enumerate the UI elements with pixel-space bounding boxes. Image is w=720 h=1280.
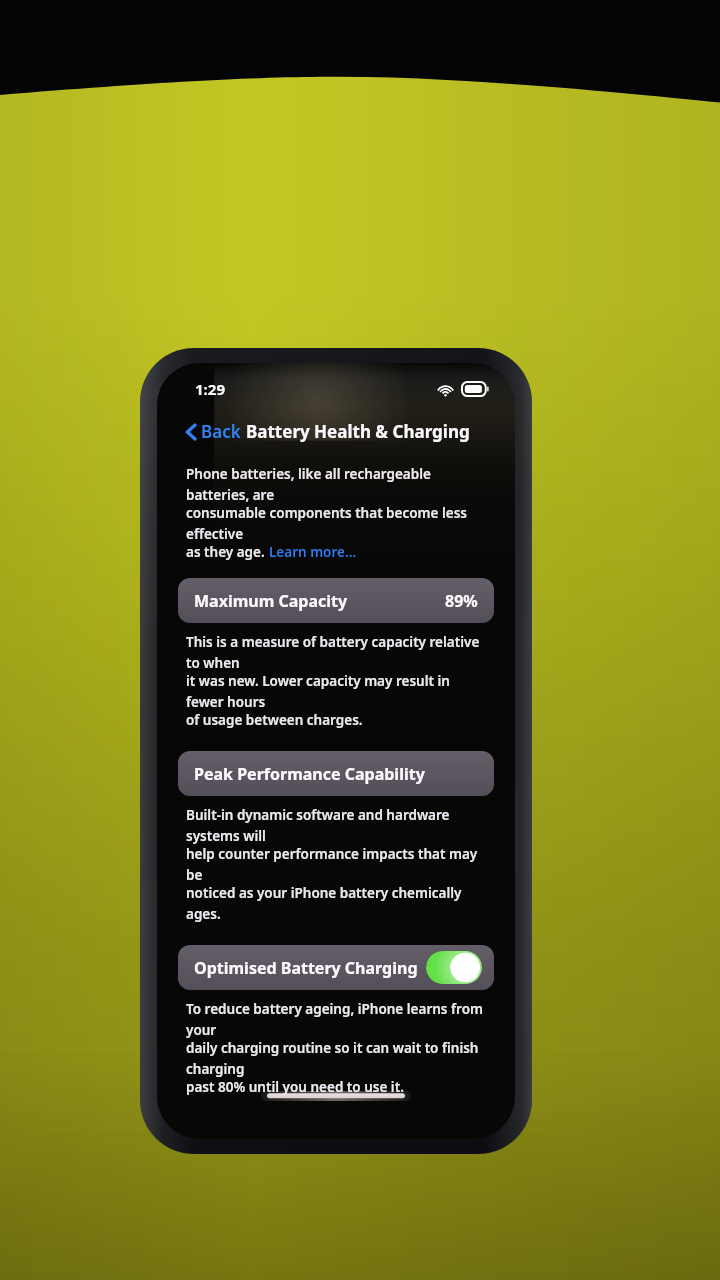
button[interactable]: Back [179, 416, 247, 447]
staticText: noticed as your iPhone battery chemicall… [186, 884, 490, 923]
staticText: Maximum Capacity [194, 590, 348, 612]
button[interactable]: Optimised Battery Charging [178, 945, 494, 990]
staticText: This is a measure of battery capacity re… [186, 633, 490, 672]
staticText: 89% [445, 590, 478, 612]
staticText: Battery Health & Charging [246, 420, 470, 443]
button[interactable]: Maximum Capacity [178, 578, 494, 623]
staticText: consumable components that become less e… [186, 504, 490, 543]
staticText: daily charging routine so it can wait to… [186, 1039, 490, 1078]
button[interactable]: Peak Performance Capability [178, 751, 494, 796]
staticText: Phone batteries, like all rechargeable b… [186, 465, 490, 504]
button[interactable]: Learn more… [269, 543, 357, 561]
staticText: as they age. [186, 543, 269, 561]
staticText: To reduce battery ageing, iPhone learns … [186, 1000, 490, 1039]
staticText: it was new. Lower capacity may result in… [186, 672, 490, 711]
staticText: Peak Performance Capability [194, 763, 425, 785]
staticText: Built-in dynamic software and hardware s… [186, 806, 490, 845]
staticText: 1:29 [195, 379, 225, 399]
staticText: Back [201, 420, 241, 443]
staticText: past 80% until you need to use it. [186, 1078, 404, 1096]
staticText: Optimised Battery Charging [194, 957, 418, 979]
staticText: of usage between charges. [186, 711, 363, 729]
button[interactable]: Optimised Battery Charging toggle, on [426, 951, 482, 984]
staticText: help counter performance impacts that ma… [186, 845, 490, 884]
